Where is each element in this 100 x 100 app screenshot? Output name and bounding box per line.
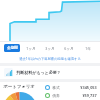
staticText: 全期間 — [7, 46, 18, 51]
staticText: 1年 — [85, 46, 91, 51]
staticText: ポートフォリオ — [3, 84, 35, 90]
button[interactable]: 株式 — [45, 85, 97, 90]
button[interactable]: 過去1年以内の下落局面の時期を確認する — [0, 54, 100, 63]
staticText: 3ヶ月 — [45, 46, 55, 51]
button[interactable]: Chart — [0, 66, 100, 79]
staticText: 過去1年以内の下落局面の時期を確認する — [19, 56, 81, 61]
staticText: 6ヶ月 — [64, 46, 74, 51]
button[interactable]: 1年 — [79, 44, 96, 52]
button[interactable]: 債券 — [45, 93, 97, 98]
button[interactable]: 3ヶ月 — [41, 44, 58, 52]
other: Chart — [4, 68, 13, 77]
button[interactable]: 全期間 — [4, 44, 20, 52]
staticText: ¥59,737 — [82, 93, 97, 98]
staticText: 1ヶ月 — [26, 46, 36, 51]
button[interactable]: 1ヶ月 — [22, 44, 39, 52]
staticText: 株式 — [52, 85, 60, 90]
staticText: ¥345,053 — [80, 85, 97, 90]
button[interactable]: 6ヶ月 — [60, 44, 77, 52]
staticText: 判断材料がもっと必要？ — [16, 70, 61, 75]
staticText: 債券 — [52, 93, 60, 98]
